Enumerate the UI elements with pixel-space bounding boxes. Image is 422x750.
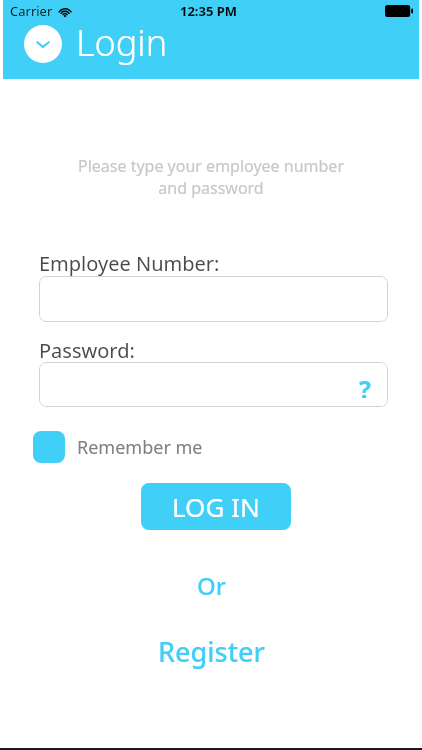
staticText: Remember me bbox=[77, 435, 203, 460]
staticText: LOG IN bbox=[172, 489, 260, 524]
staticText: Please type your employee number and pas… bbox=[20, 155, 402, 199]
button[interactable]: Register bbox=[0, 631, 422, 671]
button[interactable]: Password help bbox=[352, 372, 378, 398]
staticText: ? bbox=[359, 372, 371, 398]
staticText: Register bbox=[158, 633, 265, 670]
staticText: Employee Number: bbox=[39, 250, 220, 277]
staticText: Password: bbox=[39, 337, 135, 364]
staticText: 12:35 PM bbox=[180, 2, 238, 20]
button[interactable]: LOG IN bbox=[141, 483, 291, 530]
button[interactable]: Password field bbox=[39, 362, 388, 407]
button[interactable]: Dismiss bbox=[24, 25, 62, 63]
staticText: Carrier bbox=[10, 2, 53, 20]
staticText: Or bbox=[197, 569, 226, 602]
button[interactable]: Remember me bbox=[33, 431, 203, 463]
staticText: Login bbox=[76, 18, 168, 67]
button[interactable]: Employee number field bbox=[39, 276, 388, 322]
